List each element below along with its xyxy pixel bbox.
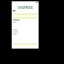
- staticText: SHOPPING: [18, 6, 33, 10]
- button[interactable]: SHOPPING: [12, 6, 39, 10]
